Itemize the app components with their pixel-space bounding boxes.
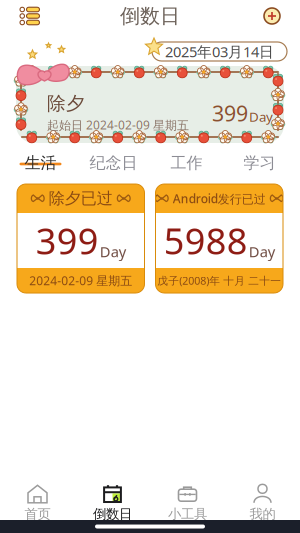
staticText: 2024-02-09 星期五 [29,272,132,288]
staticText: 2025年03月14日 [165,42,274,61]
button[interactable]: 小工具 [150,474,225,524]
staticText: 倒数日 [120,4,180,28]
button[interactable]: 工作 [150,152,223,174]
staticText: 399 [36,217,99,264]
staticText: 工作 [170,153,202,173]
staticText: 首页 [24,506,50,522]
staticText: 小工具 [168,506,207,522]
button[interactable]: Android发行已过 [155,184,283,293]
button[interactable]: 我的 [225,474,300,524]
staticText: 起始日 2024-02-09 星期五 [47,117,189,133]
staticText: Day [249,242,275,261]
button[interactable]: Add [244,3,280,29]
staticText: 生活 [24,153,56,173]
button[interactable]: 生活 [4,152,77,174]
button[interactable]: 纪念日 [77,152,150,174]
staticText: Android发行已过 [173,190,266,206]
button[interactable]: 学习 [223,152,296,174]
staticText: 399 [212,99,248,127]
staticText: Day [249,108,273,125]
staticText: 5988 [164,217,248,264]
staticText: 我的 [249,506,275,522]
staticText: 除夕 [47,92,85,115]
staticText: 纪念日 [89,153,137,173]
button[interactable]: Menu [20,3,56,29]
button[interactable]: 除夕已过 [17,184,144,293]
staticText: Day [100,242,126,261]
staticText: 戊子(2008)年 十月 二十一 [157,273,281,288]
button[interactable]: 倒数日 [75,474,150,524]
staticText: 学习 [243,153,275,173]
staticText: 倒数日 [93,506,132,522]
staticText: 除夕已过 [49,189,113,208]
button[interactable]: 首页 [0,474,75,524]
